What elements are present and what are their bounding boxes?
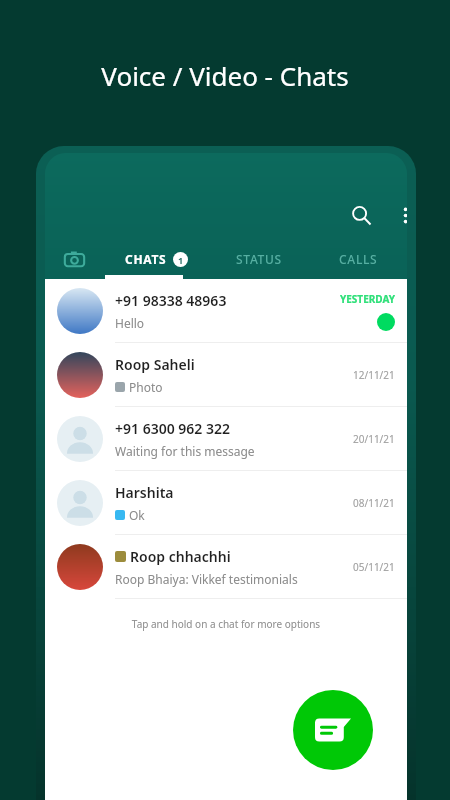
staticText: CALLS	[339, 251, 378, 267]
staticText: YESTERDAY	[340, 292, 395, 306]
button[interactable]: New chat	[293, 690, 373, 770]
staticText: Tap and hold on a chat for more options	[45, 617, 407, 631]
button[interactable]: CHATS	[103, 239, 209, 279]
staticText: 1	[178, 254, 184, 266]
staticText: Waiting for this message	[115, 443, 255, 459]
button[interactable]: Roop Saheli	[45, 343, 407, 407]
staticText: Ok	[129, 507, 145, 523]
staticText: 20/11/21	[353, 432, 395, 446]
staticText: STATUS	[236, 251, 282, 267]
staticText: Roop Bhaiya: Vikkef testimonials	[115, 571, 298, 587]
button[interactable]: +91 98338 48963	[45, 279, 407, 343]
staticText: Voice / Video - Chats	[0, 58, 450, 93]
button[interactable]: +91 6300 962 322	[45, 407, 407, 471]
button[interactable]: CALLS	[309, 239, 407, 279]
staticText: Photo	[129, 379, 163, 395]
staticText: CHATS	[125, 251, 167, 267]
button[interactable]: Search	[341, 195, 381, 235]
button[interactable]: More options	[385, 195, 407, 235]
staticText: Harshita	[115, 483, 174, 502]
button[interactable]: STATUS	[209, 239, 309, 279]
staticText: 12/11/21	[353, 368, 395, 382]
staticText: Roop Saheli	[115, 355, 195, 374]
button[interactable]: Camera	[45, 239, 103, 279]
button[interactable]: Roop chhachhi	[45, 535, 407, 599]
staticText: +91 98338 48963	[115, 291, 227, 310]
button[interactable]: Harshita	[45, 471, 407, 535]
staticText: Hello	[115, 315, 145, 331]
staticText: +91 6300 962 322	[115, 419, 231, 438]
staticText: Roop chhachhi	[130, 547, 231, 566]
staticText: 08/11/21	[353, 496, 395, 510]
staticText: 05/11/21	[353, 560, 395, 574]
